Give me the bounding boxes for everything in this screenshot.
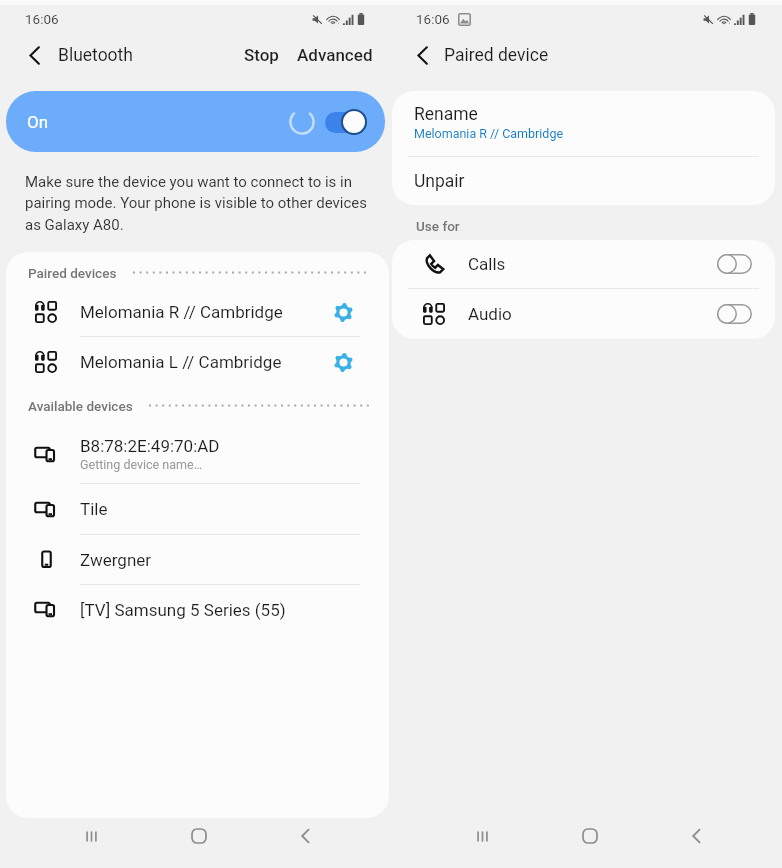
staticText: Melomania R // Cambridge: [414, 126, 564, 141]
button[interactable]: On: [6, 91, 385, 152]
staticText: Zwergner: [80, 550, 152, 570]
button[interactable]: Toggle Calls: [698, 240, 770, 288]
button[interactable]: Melomania L // Cambridge: [6, 337, 389, 387]
button[interactable]: Advanced: [288, 33, 391, 77]
button[interactable]: Calls: [392, 240, 775, 288]
staticText: Stop: [244, 45, 279, 65]
button[interactable]: Back: [391, 33, 455, 77]
button[interactable]: Toggle Audio: [698, 289, 770, 338]
button[interactable]: Recents: [429, 811, 536, 861]
staticText: Getting device name…: [80, 457, 203, 472]
staticText: Bluetooth: [58, 45, 133, 66]
button[interactable]: [TV] Samsung 5 Series (55): [6, 585, 389, 634]
staticText: 16:06: [25, 11, 59, 27]
button[interactable]: Stop: [235, 33, 288, 77]
staticText: Paired devices: [28, 265, 117, 281]
button[interactable]: Back: [252, 811, 359, 861]
button[interactable]: Melomania R // Cambridge: [6, 294, 389, 336]
staticText: Paired device: [444, 45, 549, 66]
button[interactable]: Back: [0, 33, 70, 77]
button[interactable]: Unpair: [392, 157, 775, 205]
staticText: Audio: [468, 304, 512, 324]
staticText: Rename: [414, 104, 478, 125]
staticText: Melomania L // Cambridge: [80, 352, 282, 372]
button[interactable]: Tile: [6, 484, 389, 534]
button[interactable]: Rename: [392, 91, 775, 156]
staticText: On: [27, 112, 49, 132]
button[interactable]: Home: [536, 811, 643, 861]
staticText: Use for: [416, 218, 460, 234]
button[interactable]: Audio: [392, 289, 775, 338]
button[interactable]: Device settings: [319, 291, 367, 333]
staticText: Calls: [468, 254, 506, 274]
staticText: Unpair: [414, 171, 465, 192]
button[interactable]: Zwergner: [6, 535, 389, 584]
button[interactable]: Back: [643, 811, 750, 861]
staticText: Advanced: [297, 45, 373, 65]
button[interactable]: B8:78:2E:49:70:AD: [6, 425, 389, 483]
button[interactable]: Recents: [38, 811, 145, 861]
button[interactable]: Home: [145, 811, 252, 861]
staticText: B8:78:2E:49:70:AD: [80, 436, 220, 456]
staticText: 16:06: [416, 11, 450, 27]
staticText: [TV] Samsung 5 Series (55): [80, 600, 286, 620]
staticText: Available devices: [28, 398, 133, 414]
staticText: Tile: [80, 499, 108, 519]
staticText: Make sure the device you want to connect…: [25, 173, 367, 234]
staticText: Melomania R // Cambridge: [80, 302, 283, 322]
button[interactable]: Device settings: [319, 337, 367, 387]
